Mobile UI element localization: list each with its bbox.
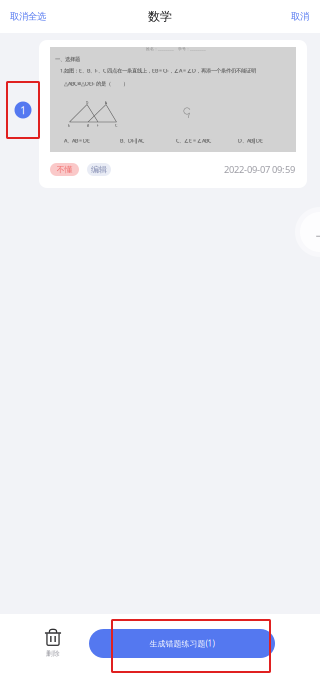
button[interactable]: Item 1 selected	[8, 86, 38, 134]
staticText: 1.如图：E、B、F、C 四点在一条直线上，EB = CF，∠A = ∠D，再添…	[60, 67, 256, 74]
staticText: 2022-09-07 09:59	[224, 163, 295, 176]
button[interactable]: Scroll to top	[294, 206, 320, 258]
staticText: △ABC≌△DEF 的是（ ）	[64, 80, 128, 87]
button[interactable]: 编辑	[87, 163, 111, 176]
button[interactable]: 删除	[32, 627, 74, 659]
staticText: 不懂	[56, 165, 72, 174]
staticText: 数学	[148, 9, 172, 24]
staticText: 姓名：________ 学号：________	[146, 46, 206, 51]
staticText: 上	[316, 225, 320, 239]
staticText: E	[68, 122, 70, 128]
staticText: 取消全选	[10, 11, 46, 22]
staticText: D	[85, 100, 88, 105]
staticText: B、DF∥AC	[120, 137, 144, 144]
staticText: F	[96, 122, 98, 128]
staticText: C、∠E = ∠ABC	[176, 137, 211, 144]
staticText: B	[86, 122, 89, 128]
staticText: A、AB = DE	[64, 137, 90, 144]
staticText: 1	[20, 103, 26, 117]
staticText: 取消	[291, 11, 309, 22]
button[interactable]: 取消全选	[5, 2, 51, 30]
staticText: 编辑	[91, 165, 107, 174]
staticText: 一、选择题	[55, 56, 80, 63]
staticText: 删除	[46, 649, 60, 658]
button[interactable]: 生成错题练习题(1)	[89, 629, 275, 658]
staticText: C	[115, 122, 118, 128]
button[interactable]: 不懂	[50, 163, 79, 176]
button[interactable]: 取消	[284, 2, 316, 30]
staticText: 生成错题练习题(1)	[149, 638, 214, 649]
staticText: A	[104, 100, 107, 105]
staticText: D、AB∥DE	[238, 137, 263, 144]
